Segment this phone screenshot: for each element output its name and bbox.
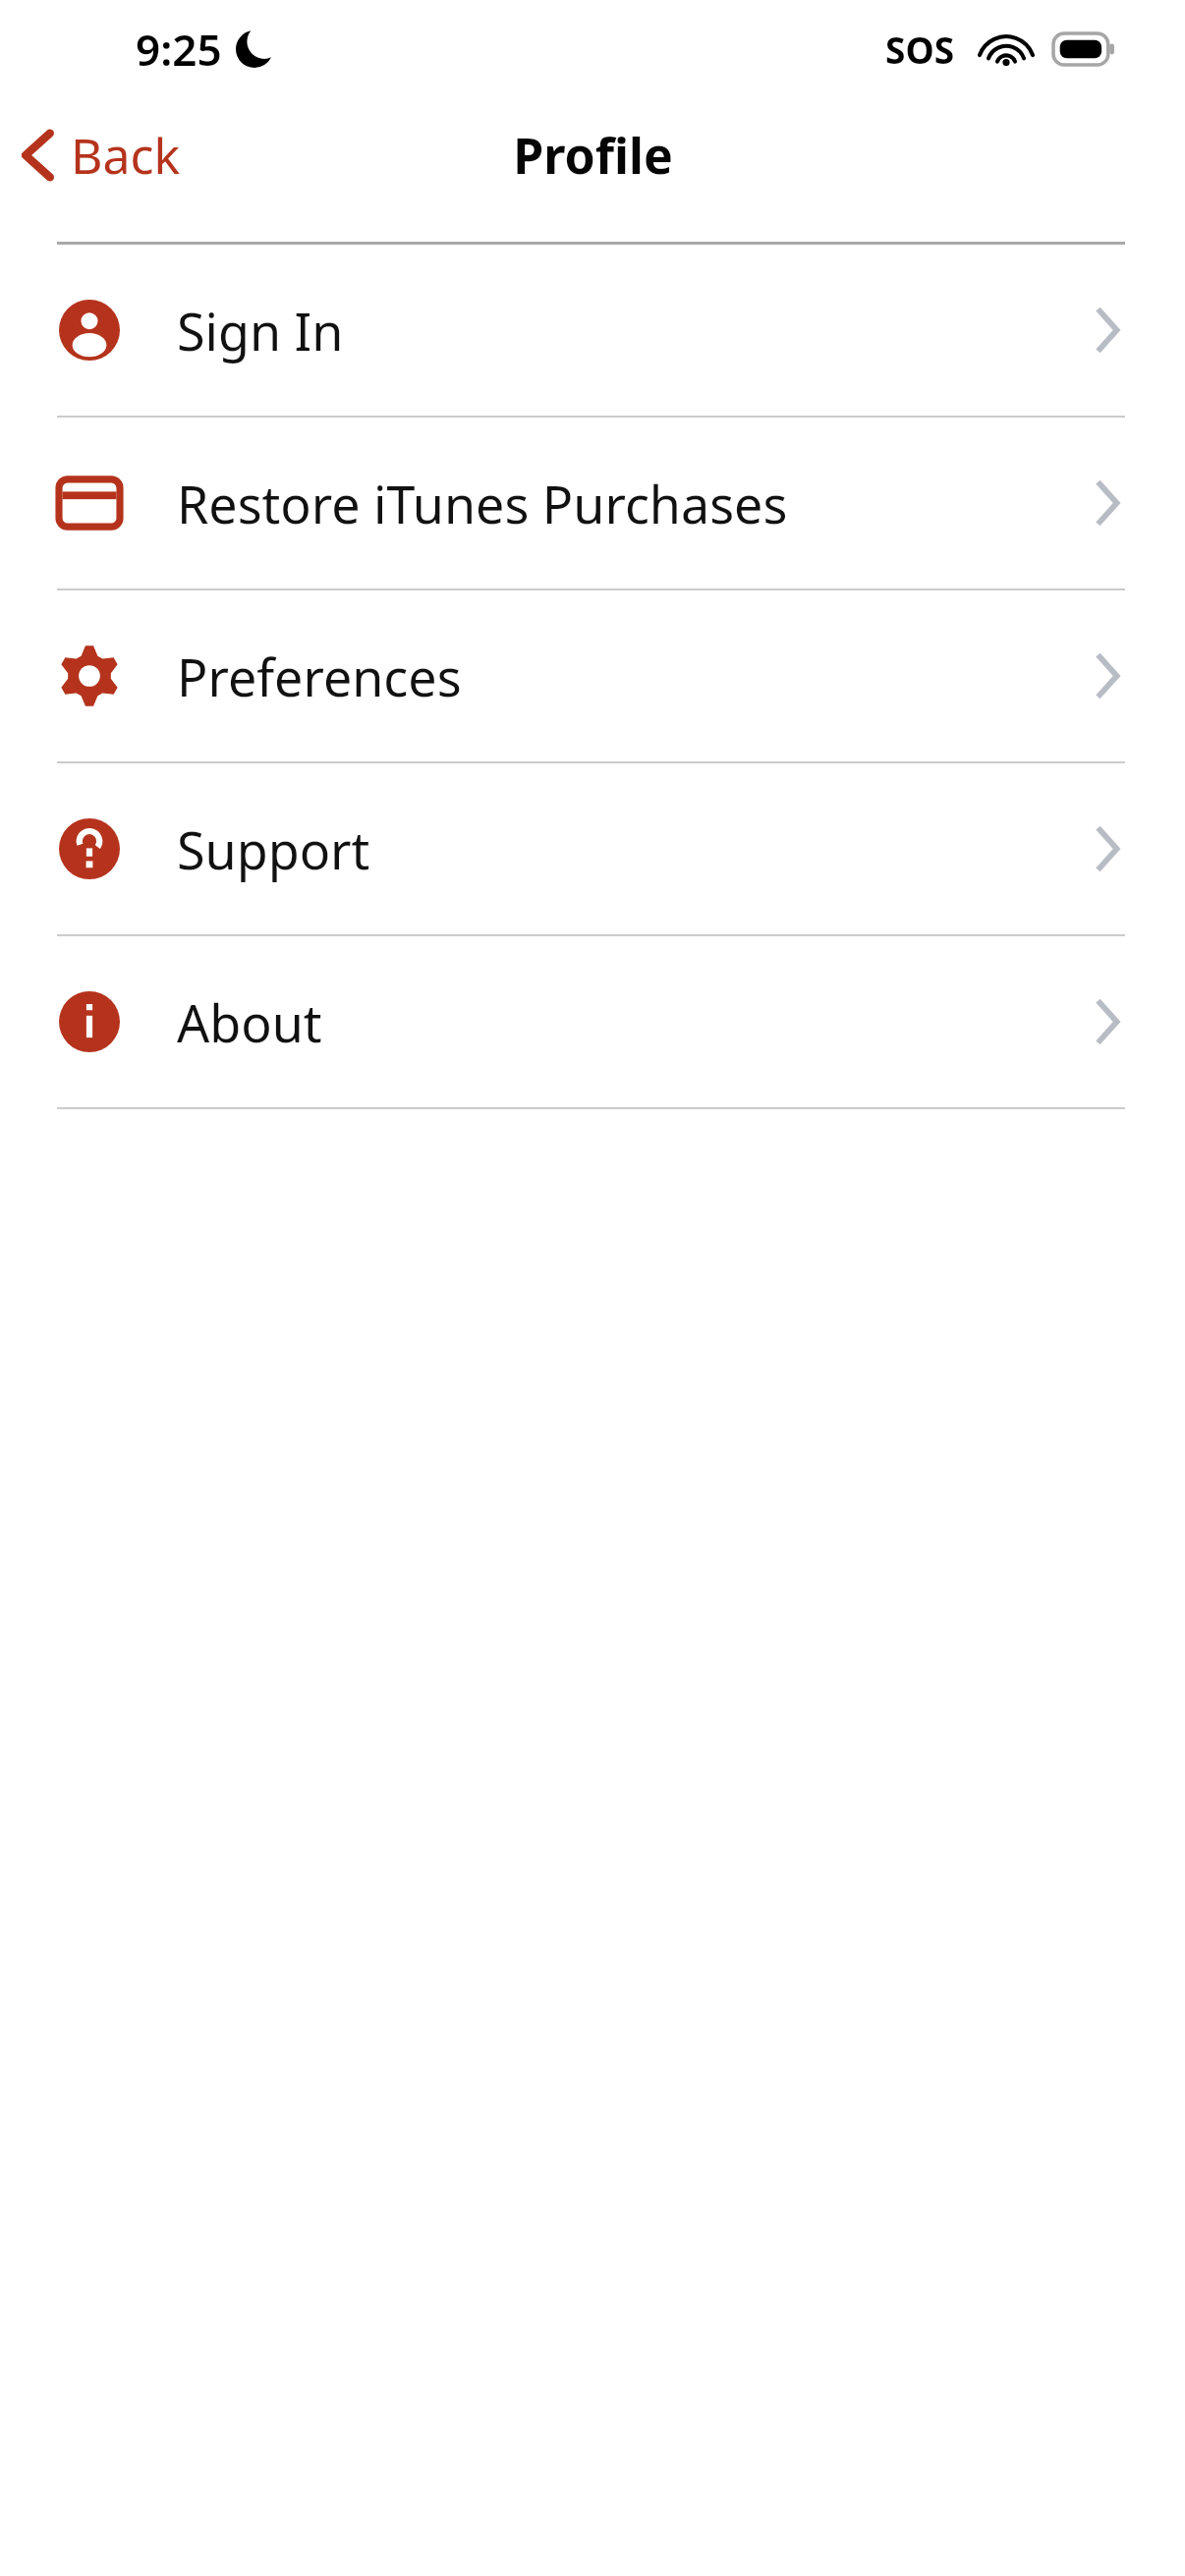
staticText: Preferences bbox=[177, 642, 1091, 711]
staticText: Profile bbox=[513, 122, 673, 189]
button[interactable]: Back bbox=[0, 112, 204, 198]
staticText: Restore iTunes Purchases bbox=[177, 469, 1091, 538]
staticText: SOS bbox=[885, 25, 955, 74]
staticText: Sign In bbox=[177, 296, 1091, 365]
staticText: Back bbox=[71, 122, 181, 189]
staticText: 9:25 bbox=[136, 20, 222, 79]
staticText: Support bbox=[177, 814, 1091, 884]
button[interactable]: About bbox=[0, 936, 1185, 1107]
button[interactable]: Restore iTunes Purchases bbox=[0, 418, 1185, 588]
staticText: About bbox=[177, 987, 1091, 1057]
button[interactable]: Support bbox=[0, 763, 1185, 934]
button[interactable]: Preferences bbox=[0, 590, 1185, 761]
button[interactable]: Sign In bbox=[0, 245, 1185, 416]
